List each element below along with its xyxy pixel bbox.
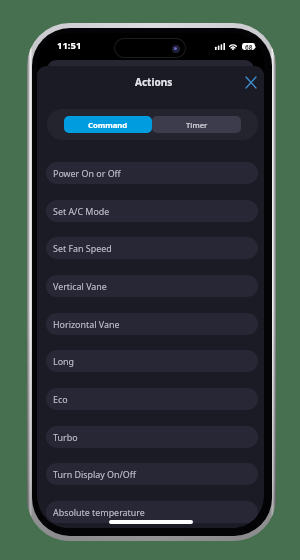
- button[interactable]: Turn Display On/Off: [46, 463, 258, 485]
- staticText: Horizontal Vane: [53, 318, 120, 330]
- staticText: Actions: [135, 75, 173, 89]
- button[interactable]: Absolute temperature: [46, 501, 258, 523]
- staticText: Vertical Vane: [53, 280, 107, 292]
- button[interactable]: Power On or Off: [46, 162, 258, 184]
- button[interactable]: Set A/C Mode: [46, 200, 258, 222]
- button[interactable]: Command: [64, 116, 152, 133]
- staticText: Absolute temperature: [53, 506, 145, 518]
- staticText: 68: [245, 43, 253, 50]
- staticText: Timer: [186, 120, 208, 130]
- button[interactable]: Close: [240, 71, 262, 93]
- button[interactable]: Horizontal Vane: [46, 313, 258, 335]
- staticText: Set Fan Speed: [53, 242, 112, 254]
- staticText: Turn Display On/Off: [53, 468, 136, 480]
- staticText: 11:51: [57, 39, 82, 52]
- button[interactable]: Timer: [152, 116, 241, 133]
- staticText: Set A/C Mode: [53, 205, 110, 217]
- staticText: Eco: [53, 393, 68, 405]
- button[interactable]: Set Fan Speed: [46, 237, 258, 259]
- staticText: Turbo: [53, 431, 78, 443]
- button[interactable]: Vertical Vane: [46, 275, 258, 297]
- button[interactable]: Eco: [46, 388, 258, 410]
- staticText: Command: [88, 120, 128, 130]
- button[interactable]: Long: [46, 350, 258, 372]
- staticText: Long: [53, 355, 74, 367]
- button[interactable]: Turbo: [46, 426, 258, 448]
- staticText: Power On or Off: [53, 167, 121, 179]
